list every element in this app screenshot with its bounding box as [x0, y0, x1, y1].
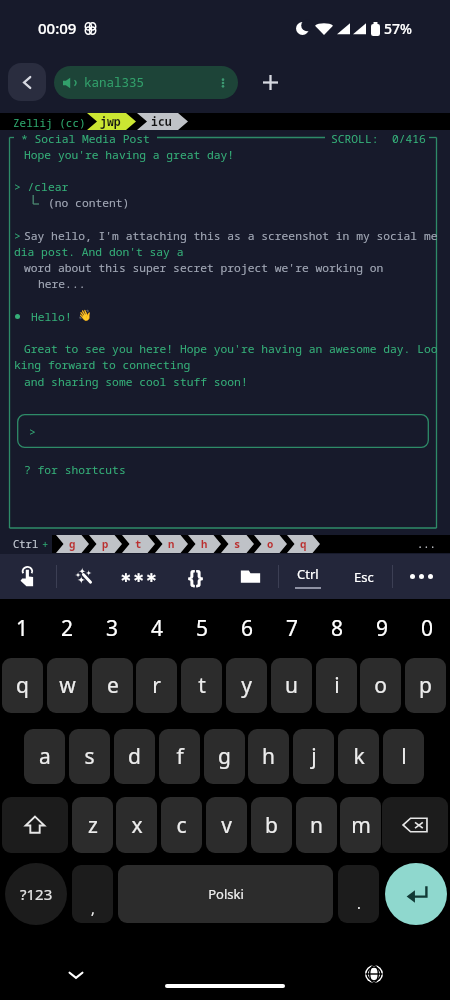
button[interactable]: . — [338, 865, 379, 923]
button[interactable]: 7 — [270, 599, 315, 657]
button[interactable]: 1 — [0, 599, 45, 657]
button[interactable]: l — [383, 729, 424, 784]
button[interactable]: b — [251, 797, 292, 853]
staticText: + — [42, 537, 49, 551]
staticText: Ctrl — [13, 537, 39, 551]
button[interactable]: > — [17, 414, 429, 448]
button[interactable]: Hide keyboard — [58, 957, 94, 993]
button[interactable]: p — [405, 658, 446, 713]
button[interactable]: Enter — [385, 863, 447, 925]
button[interactable]: r — [136, 658, 177, 713]
button[interactable]: p — [89, 535, 122, 553]
button[interactable]: h — [248, 729, 289, 784]
button[interactable]: h — [188, 535, 221, 553]
staticText: . — [357, 894, 361, 913]
button[interactable]: Polski — [118, 865, 333, 923]
staticText: > /clear — [14, 179, 69, 194]
button[interactable]: jwp — [87, 113, 136, 130]
button[interactable]: g — [204, 729, 245, 784]
button[interactable]: f — [159, 729, 200, 784]
staticText: ?123 — [20, 884, 53, 904]
staticText: Polski — [208, 885, 244, 903]
button[interactable]: o — [254, 535, 287, 553]
button[interactable]: Files — [222, 554, 278, 599]
button[interactable]: 8 — [315, 599, 360, 657]
staticText: , — [91, 899, 95, 918]
button[interactable]: o — [360, 658, 401, 713]
button[interactable]: 0 — [405, 599, 450, 657]
staticText: icu — [151, 114, 172, 130]
button[interactable]: t — [181, 658, 222, 713]
staticText: x — [131, 811, 143, 840]
button[interactable]: ?123 — [5, 863, 67, 925]
staticText: 8 — [331, 614, 344, 643]
staticText: s — [234, 537, 241, 551]
staticText: ? for shortcuts — [24, 462, 126, 477]
staticText: (no content) — [48, 195, 130, 210]
button[interactable]: d — [114, 729, 155, 784]
button[interactable]: , — [72, 865, 113, 923]
button[interactable]: 6 — [225, 599, 270, 657]
button[interactable]: More options — [393, 554, 450, 599]
staticText: q — [16, 671, 29, 700]
staticText: n — [168, 537, 175, 551]
button[interactable]: n — [155, 535, 188, 553]
button[interactable]: Back — [8, 63, 46, 101]
staticText: dia post. And don't say a — [14, 244, 184, 259]
button[interactable]: Esc — [336, 554, 392, 599]
button[interactable]: q — [287, 535, 320, 553]
staticText: Say hello, I'm attaching this as a scree… — [24, 228, 438, 243]
button[interactable]: backspace — [382, 797, 448, 853]
staticText: d — [128, 742, 141, 771]
staticText: o — [374, 671, 387, 700]
staticText: s — [84, 742, 95, 771]
button[interactable]: g — [56, 535, 89, 553]
staticText: {} — [188, 564, 203, 590]
staticText: ∗∗∗ — [120, 569, 159, 585]
staticText: 00:09 — [38, 18, 77, 38]
button[interactable]: shift — [2, 797, 68, 853]
staticText: a — [39, 742, 51, 771]
staticText: v — [221, 811, 232, 840]
button[interactable]: 4 — [135, 599, 180, 657]
button[interactable]: New tab — [252, 64, 288, 100]
button[interactable]: c — [161, 797, 202, 853]
button[interactable]: 5 — [180, 599, 225, 657]
staticText: n — [310, 811, 323, 840]
button[interactable]: j — [293, 729, 334, 784]
button[interactable]: Braces — [167, 554, 223, 599]
button[interactable]: k — [338, 729, 379, 784]
staticText: p — [102, 537, 109, 551]
button[interactable]: Change language — [356, 956, 392, 992]
button[interactable]: Asterisks — [111, 554, 167, 599]
button[interactable]: Touch cursor — [0, 554, 56, 599]
button[interactable]: AI assist — [56, 554, 112, 599]
button[interactable]: x — [116, 797, 157, 853]
button[interactable]: y — [226, 658, 267, 713]
staticText: k — [353, 742, 365, 771]
button[interactable]: Ctrl — [279, 554, 336, 599]
button[interactable]: 2 — [45, 599, 90, 657]
button[interactable]: 3 — [90, 599, 135, 657]
button[interactable]: 9 — [360, 599, 405, 657]
button[interactable]: u — [271, 658, 312, 713]
staticText: i — [334, 671, 340, 700]
button[interactable]: i — [316, 658, 357, 713]
button[interactable]: s — [69, 729, 110, 784]
button[interactable]: e — [92, 658, 133, 713]
button[interactable]: q — [2, 658, 43, 713]
button[interactable]: m — [340, 797, 381, 853]
button[interactable]: icu — [137, 113, 188, 130]
staticText: and sharing some cool stuff soon! — [24, 374, 248, 389]
button[interactable]: w — [47, 658, 88, 713]
staticText: > — [29, 424, 36, 439]
button[interactable]: kanal335 — [54, 66, 238, 99]
button[interactable]: t — [122, 535, 155, 553]
staticText: ... — [417, 537, 436, 551]
button[interactable]: s — [221, 535, 254, 553]
button[interactable]: a — [24, 729, 65, 784]
button[interactable]: v — [206, 797, 247, 853]
staticText: j — [311, 742, 317, 771]
button[interactable]: z — [72, 797, 113, 853]
button[interactable]: n — [296, 797, 337, 853]
